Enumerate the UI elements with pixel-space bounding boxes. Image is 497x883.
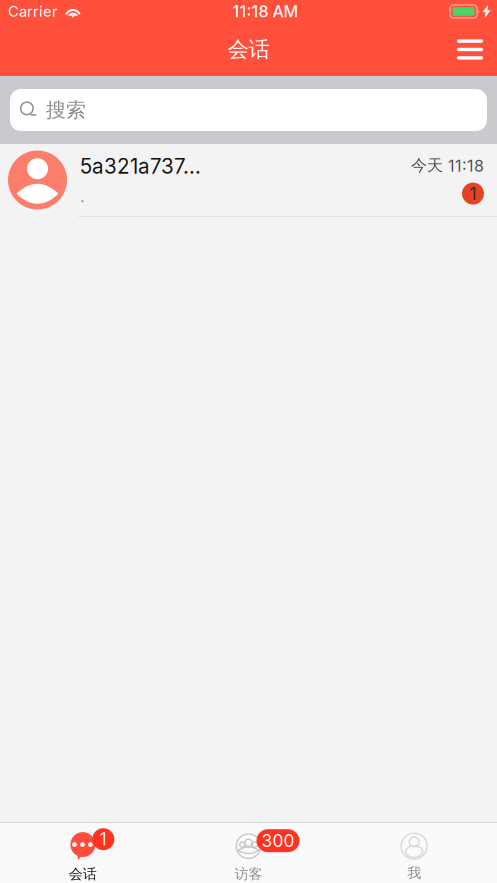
staticText: 5a321a737... xyxy=(80,154,201,179)
staticText: 1 xyxy=(100,829,107,849)
button[interactable]: 1 xyxy=(0,830,166,883)
staticText: 300 xyxy=(261,830,294,851)
button[interactable]: Menu xyxy=(443,23,497,76)
staticText: 我 xyxy=(407,864,421,882)
button[interactable]: 搜索 xyxy=(10,89,487,131)
staticText: Carrier xyxy=(8,3,58,20)
button[interactable]: 5a321a737... xyxy=(0,144,497,217)
staticText: 11:18 AM xyxy=(232,2,298,21)
staticText: 会话 xyxy=(69,865,97,883)
staticText: 会话 xyxy=(227,36,269,63)
staticText: 1 xyxy=(469,183,476,204)
staticText: 搜索 xyxy=(46,97,86,123)
staticText: 访客 xyxy=(234,865,262,883)
staticText: . xyxy=(80,187,85,206)
button[interactable]: 我 xyxy=(331,831,497,882)
button[interactable]: 300 xyxy=(166,830,331,883)
staticText: 今天 11:18 xyxy=(411,155,484,176)
